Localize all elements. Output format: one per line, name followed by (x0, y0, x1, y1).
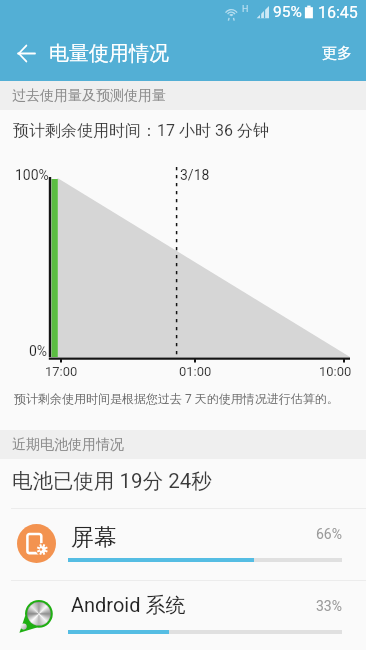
button[interactable]: Android 系统 (0, 581, 366, 650)
button[interactable]: 更多 (308, 34, 366, 73)
staticText: 01:00 (179, 364, 212, 379)
staticText: 10:00 (319, 364, 352, 379)
staticText: 近期电池使用情况 (12, 436, 124, 454)
staticText: 3/18 (180, 167, 210, 183)
button[interactable]: Back (5, 32, 47, 74)
staticText: H (242, 4, 249, 15)
staticText: Android 系统 (71, 593, 186, 618)
button[interactable]: 屏幕 (0, 509, 366, 581)
staticText: 16:45 (318, 3, 358, 22)
staticText: 95% (273, 3, 302, 21)
staticText: 0% (29, 343, 48, 359)
staticText: 预计剩余使用时间是根据您过去 7 天的使用情况进行估算的。 (14, 391, 339, 406)
staticText: 电池已使用 19分 24秒 (12, 468, 212, 494)
staticText: 预计剩余使用时间：17 小时 36 分钟 (13, 121, 269, 141)
staticText: 17:00 (45, 364, 78, 379)
staticText: 更多 (322, 44, 352, 63)
staticText: 100% (15, 167, 49, 183)
staticText: 过去使用量及预测使用量 (12, 87, 166, 105)
staticText: 66% (316, 526, 342, 542)
staticText: 电量使用情况 (49, 41, 169, 66)
staticText: 屏幕 (71, 523, 117, 552)
staticText: 33% (316, 598, 342, 614)
